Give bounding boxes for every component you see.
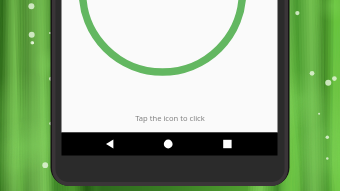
- button[interactable]: Back: [94, 133, 126, 155]
- staticText: Tap the icon to click: [135, 113, 205, 123]
- button[interactable]: Icon: [82, 0, 243, 74]
- button[interactable]: Home: [152, 133, 184, 155]
- button[interactable]: Recent apps: [211, 133, 243, 155]
